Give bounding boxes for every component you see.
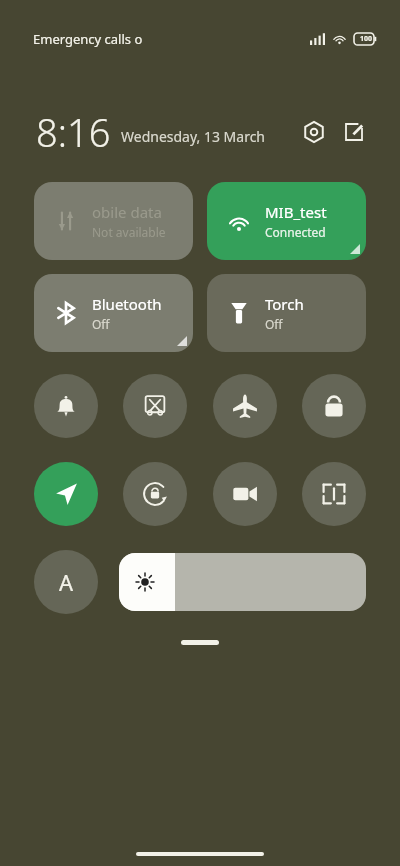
button[interactable]: Auto brightness — [34, 550, 98, 614]
button[interactable]: Edit — [338, 116, 370, 148]
staticText: Not available — [92, 224, 166, 240]
staticText: Connected — [265, 224, 326, 240]
staticText: MIB_test — [265, 202, 327, 222]
staticText: Torch — [265, 294, 304, 314]
staticText: A — [59, 567, 74, 597]
button[interactable]: obile data — [34, 182, 193, 260]
button[interactable]: Bluetooth — [34, 274, 193, 352]
button[interactable]: Lock — [302, 374, 366, 438]
staticText: 100 — [360, 34, 373, 44]
staticText: Emergency calls o — [33, 30, 143, 48]
button[interactable]: Torch — [207, 274, 366, 352]
staticText: Off — [92, 316, 110, 332]
staticText: 8:16 — [36, 106, 111, 158]
button[interactable]: Scan — [302, 462, 366, 526]
button[interactable]: MIB_test — [207, 182, 366, 260]
button[interactable]: Screen record — [213, 462, 277, 526]
button[interactable]: Silent — [34, 374, 98, 438]
staticText: obile data — [92, 202, 162, 222]
button[interactable]: Brightness — [119, 553, 366, 611]
staticText: Bluetooth — [92, 294, 162, 314]
button[interactable]: Settings — [298, 116, 330, 148]
button[interactable]: Screenshot — [123, 374, 187, 438]
button[interactable]: Auto rotate — [123, 462, 187, 526]
staticText: Off — [265, 316, 283, 332]
button[interactable]: Airplane mode — [213, 374, 277, 438]
button[interactable]: Location — [34, 462, 98, 526]
staticText: Wednesday, 13 March — [121, 127, 266, 146]
